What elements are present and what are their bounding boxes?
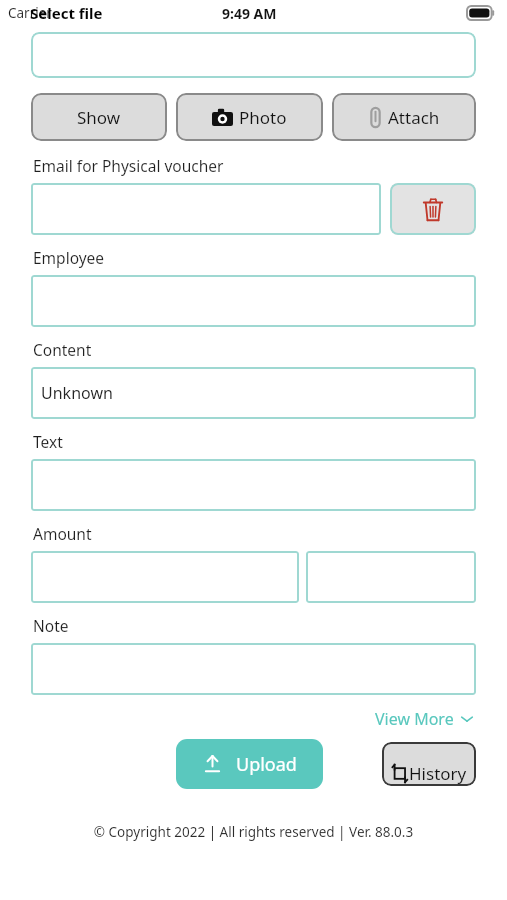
button[interactable] bbox=[306, 551, 476, 603]
button[interactable]: Delete bbox=[390, 183, 476, 235]
staticText: Unknown bbox=[41, 382, 113, 404]
staticText: Email for Physical voucher bbox=[33, 155, 224, 176]
staticText: Content bbox=[33, 339, 92, 360]
staticText: Photo bbox=[239, 106, 287, 129]
staticText: View More bbox=[375, 708, 454, 730]
button[interactable] bbox=[31, 643, 476, 695]
staticText: Amount bbox=[33, 523, 92, 544]
button[interactable]: Attach bbox=[332, 93, 476, 141]
button[interactable] bbox=[31, 551, 299, 603]
button[interactable]: Show bbox=[31, 93, 167, 141]
staticText: Carrier bbox=[8, 4, 52, 22]
staticText: Employee bbox=[33, 247, 105, 268]
button[interactable] bbox=[31, 275, 476, 327]
staticText: 9:49 AM bbox=[222, 4, 277, 23]
staticText: Upload bbox=[236, 752, 297, 777]
button[interactable]: Photo bbox=[176, 93, 323, 141]
staticText: Attach bbox=[388, 106, 440, 129]
button[interactable]: View More bbox=[373, 706, 476, 732]
staticText: Select file bbox=[30, 3, 103, 23]
staticText: History bbox=[409, 762, 467, 785]
staticText: © Copyright 2022 | All rights reserved |… bbox=[31, 823, 476, 841]
button[interactable]: Upload bbox=[176, 739, 323, 789]
staticText: Show bbox=[77, 106, 121, 129]
button[interactable] bbox=[31, 32, 476, 78]
button[interactable] bbox=[31, 459, 476, 511]
button[interactable]: Unknown bbox=[31, 367, 476, 419]
button[interactable] bbox=[31, 183, 381, 235]
staticText: Note bbox=[33, 615, 69, 636]
staticText: Text bbox=[33, 431, 63, 452]
